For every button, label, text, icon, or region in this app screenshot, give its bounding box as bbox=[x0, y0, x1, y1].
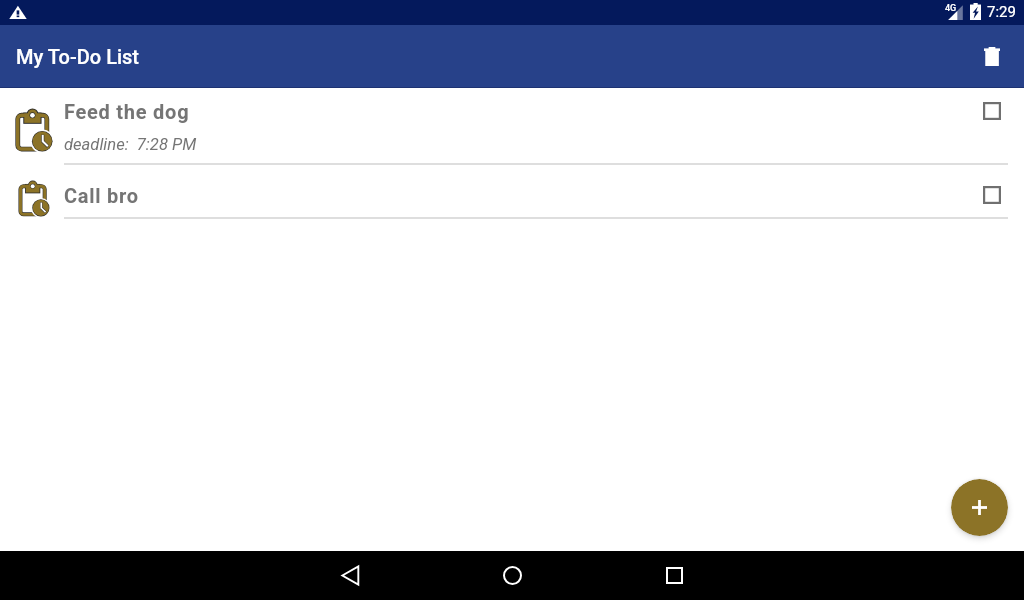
staticText: Call bro bbox=[64, 184, 139, 207]
button[interactable]: Call bro bbox=[0, 165, 1024, 219]
button[interactable]: Add task bbox=[951, 479, 1008, 536]
staticText: deadline: 7:28 PM bbox=[64, 135, 197, 154]
button[interactable]: Delete all tasks bbox=[968, 33, 1016, 81]
staticText: My To-Do List bbox=[16, 45, 139, 68]
button[interactable]: Mark Call bro done bbox=[973, 176, 1011, 214]
button[interactable]: Back bbox=[322, 551, 378, 600]
staticText: Feed the dog bbox=[64, 100, 190, 123]
button[interactable]: Mark Feed the dog done bbox=[973, 92, 1011, 130]
staticText: 7:29 bbox=[987, 3, 1016, 21]
staticText: 4G bbox=[945, 3, 957, 14]
button[interactable]: Feed the dog bbox=[0, 88, 1024, 165]
button[interactable]: Recent apps bbox=[646, 551, 702, 600]
button[interactable]: Home bbox=[484, 551, 540, 600]
